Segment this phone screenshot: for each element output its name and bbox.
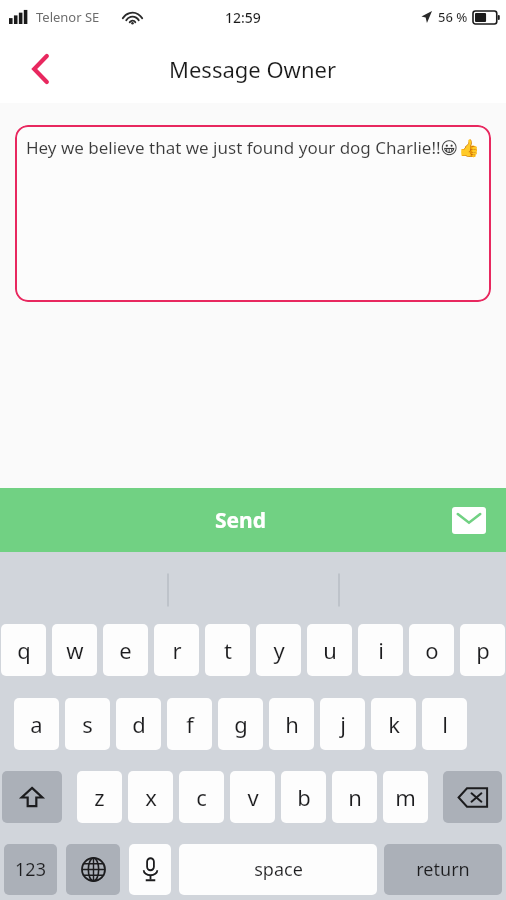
staticText: m — [395, 782, 416, 812]
staticText: c — [196, 782, 207, 812]
button[interactable]: h — [269, 698, 314, 750]
button[interactable]: m — [383, 771, 428, 823]
button[interactable]: n — [332, 771, 377, 823]
staticText: q — [17, 635, 31, 665]
staticText: g — [234, 709, 248, 739]
staticText: y — [273, 635, 285, 665]
staticText: t — [224, 635, 232, 665]
button[interactable]: b — [281, 771, 326, 823]
button[interactable]: f — [167, 698, 212, 750]
button[interactable]: x — [128, 771, 173, 823]
button[interactable]: p — [460, 624, 505, 676]
button[interactable]: q — [1, 624, 46, 676]
staticText: z — [94, 782, 105, 812]
staticText: w — [66, 635, 84, 665]
staticText: Message Owner — [169, 54, 337, 84]
staticText: j — [340, 709, 346, 739]
button[interactable]: g — [218, 698, 263, 750]
staticText: a — [30, 709, 43, 739]
button[interactable]: e — [103, 624, 148, 676]
staticText: x — [145, 782, 157, 812]
button[interactable]: z — [77, 771, 122, 823]
staticText: f — [186, 709, 194, 739]
staticText: h — [285, 709, 299, 739]
staticText: Telenor SE — [36, 8, 100, 26]
staticText: return — [416, 857, 470, 882]
button[interactable]: t — [205, 624, 250, 676]
button[interactable]: Change keyboard language — [66, 844, 120, 895]
button[interactable]: a — [14, 698, 59, 750]
staticText: l — [442, 709, 448, 739]
staticText: e — [119, 635, 132, 665]
staticText: 123 — [15, 857, 46, 882]
button[interactable]: return — [384, 844, 502, 895]
button[interactable]: Send — [0, 488, 506, 552]
staticText: b — [297, 782, 311, 812]
button[interactable]: c — [179, 771, 224, 823]
button[interactable]: j — [320, 698, 365, 750]
button[interactable]: u — [307, 624, 352, 676]
button[interactable]: space — [179, 844, 377, 895]
staticText: d — [132, 709, 146, 739]
button[interactable]: v — [230, 771, 275, 823]
staticText: r — [172, 635, 182, 665]
staticText: k — [388, 709, 400, 739]
button[interactable]: w — [52, 624, 97, 676]
staticText: 56 % — [438, 8, 468, 26]
button[interactable]: 123 — [4, 844, 57, 895]
staticText: Send — [215, 506, 267, 535]
button[interactable]: r — [154, 624, 199, 676]
button[interactable]: Shift — [2, 771, 62, 823]
staticText: o — [425, 635, 439, 665]
button[interactable]: s — [65, 698, 110, 750]
staticText: p — [476, 635, 490, 665]
button[interactable]: Hey we believe that we just found your d… — [15, 125, 491, 302]
staticText: space — [254, 857, 303, 882]
button[interactable]: Back — [14, 43, 66, 95]
staticText: 12:59 — [225, 8, 261, 27]
staticText: s — [82, 709, 93, 739]
button[interactable]: o — [409, 624, 454, 676]
staticText: u — [323, 635, 337, 665]
button[interactable]: Backspace — [443, 771, 502, 823]
button[interactable]: y — [256, 624, 301, 676]
button[interactable]: k — [371, 698, 416, 750]
staticText: v — [247, 782, 259, 812]
button[interactable]: i — [358, 624, 403, 676]
staticText: n — [348, 782, 362, 812]
button[interactable]: l — [422, 698, 467, 750]
button[interactable]: d — [116, 698, 161, 750]
staticText: Hey we believe that we just found your d… — [26, 136, 480, 159]
staticText: i — [378, 635, 384, 665]
button[interactable]: Voice input — [129, 844, 171, 895]
